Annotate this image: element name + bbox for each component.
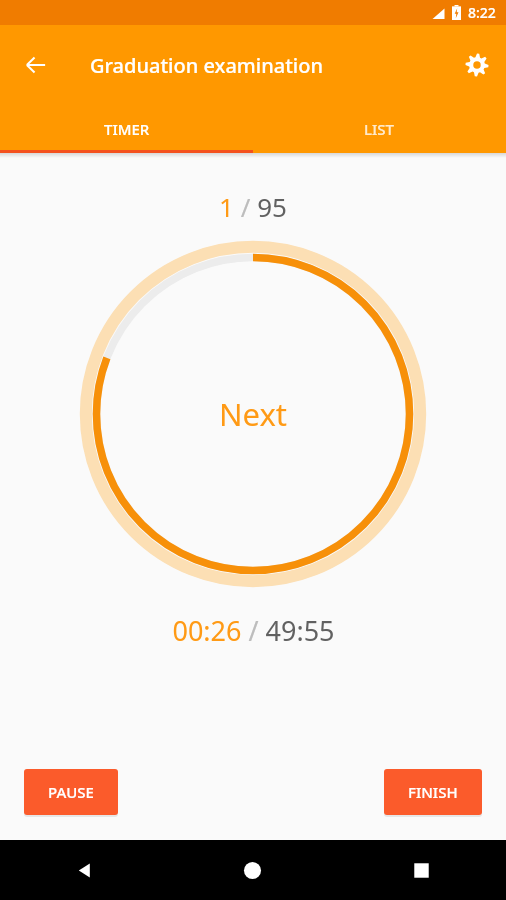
button[interactable]: LIST: [253, 105, 506, 153]
button[interactable]: Back: [12, 41, 60, 89]
button[interactable]: Back: [0, 840, 168, 900]
staticText: Next: [219, 393, 288, 435]
button[interactable]: Recents: [337, 840, 506, 900]
staticText: 1 / 95: [219, 189, 287, 224]
staticText: PAUSE: [48, 782, 94, 802]
staticText: 8:22: [468, 3, 496, 22]
button[interactable]: FINISH: [384, 769, 482, 815]
staticText: TIMER: [104, 119, 150, 139]
staticText: 00:26 / 49:55: [172, 612, 335, 649]
button[interactable]: Next: [81, 242, 425, 586]
staticText: FINISH: [408, 784, 458, 804]
button[interactable]: PAUSE: [24, 769, 118, 815]
button[interactable]: Settings: [453, 41, 501, 89]
staticText: FINISH: [408, 782, 458, 802]
staticText: Graduation examination: [90, 52, 323, 79]
staticText: PAUSE: [48, 784, 94, 804]
button[interactable]: Home: [168, 840, 337, 900]
staticText: LIST: [364, 119, 395, 139]
button[interactable]: TIMER: [0, 105, 253, 153]
